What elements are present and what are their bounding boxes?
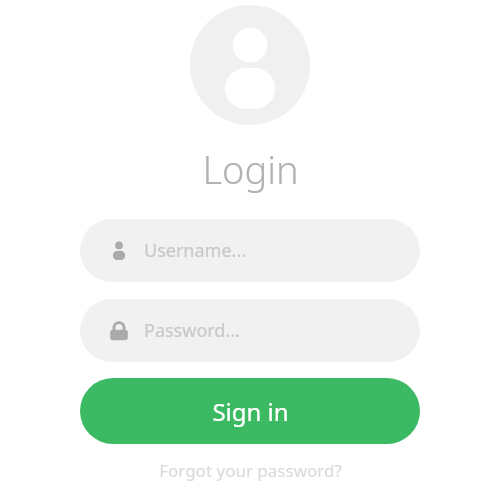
- staticText: Username...: [144, 238, 247, 263]
- button[interactable]: Sign in: [80, 378, 420, 444]
- staticText: Sign in: [212, 395, 289, 428]
- button[interactable]: Forgot your password?: [149, 453, 352, 488]
- button[interactable]: Username: [80, 219, 420, 282]
- button[interactable]: Password: [80, 299, 420, 362]
- staticText: Login: [202, 143, 299, 195]
- staticText: Password...: [144, 318, 240, 343]
- staticText: Forgot your password?: [159, 459, 342, 482]
- other: Password: [108, 320, 130, 342]
- other: Username: [108, 240, 130, 262]
